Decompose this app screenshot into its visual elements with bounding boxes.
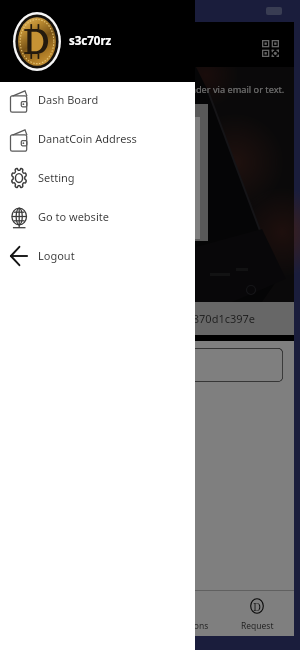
staticText: D — [253, 599, 261, 614]
button[interactable]: Dash Board — [0, 80, 195, 119]
staticText: Setting — [38, 170, 75, 185]
staticText: Go to website — [38, 209, 109, 224]
button[interactable] — [11, 348, 283, 382]
staticText: Transactions — [158, 620, 209, 632]
button[interactable]: Setting — [0, 158, 195, 197]
staticText: s3c70rz — [69, 33, 112, 49]
staticText: DanatCoin Address — [38, 131, 137, 146]
staticText: DNT4f8a27c3e9b1c5B1870d1c397e — [73, 311, 256, 326]
button[interactable]: D — [220, 590, 294, 636]
staticText: Share your DanatCoin address with the se… — [0, 83, 294, 96]
staticText: Request — [241, 620, 274, 632]
button[interactable]: Logout — [0, 236, 195, 275]
button[interactable]: Scan QR code — [253, 32, 287, 66]
button[interactable]: DanatCoin Address — [0, 119, 195, 158]
button[interactable]: Go to website — [0, 197, 195, 236]
button[interactable]: D — [146, 590, 220, 636]
staticText: Dash Board — [38, 92, 99, 107]
staticText: Logout — [38, 248, 75, 263]
